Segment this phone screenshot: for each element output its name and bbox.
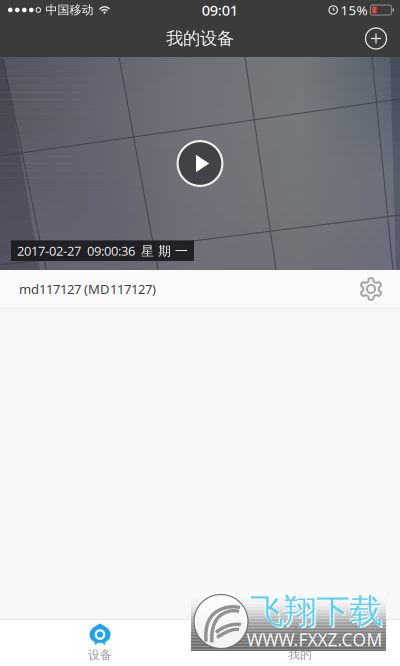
staticText: 飞翔下载: [249, 589, 381, 631]
button[interactable]: 设备: [0, 620, 200, 666]
staticText: 中国移动: [46, 2, 94, 17]
staticText: 我的: [288, 647, 312, 662]
staticText: 飞翔下载: [250, 590, 382, 632]
staticText: 飞翔下载: [252, 592, 384, 634]
staticText: md117127 (MD117127): [19, 280, 156, 298]
staticText: 15%: [340, 1, 367, 19]
button[interactable]: md117127 (MD117127): [0, 270, 400, 308]
staticText: 设备: [88, 647, 112, 662]
staticText: WWW.FXXZ.COM: [246, 628, 382, 651]
button[interactable]: 我的: [200, 620, 400, 666]
button[interactable]: Add device: [352, 20, 400, 57]
staticText: 2017-02-27 09:00:36 星 期 一: [17, 242, 188, 259]
staticText: 我的设备: [166, 28, 234, 49]
staticText: 09:01: [202, 0, 238, 20]
